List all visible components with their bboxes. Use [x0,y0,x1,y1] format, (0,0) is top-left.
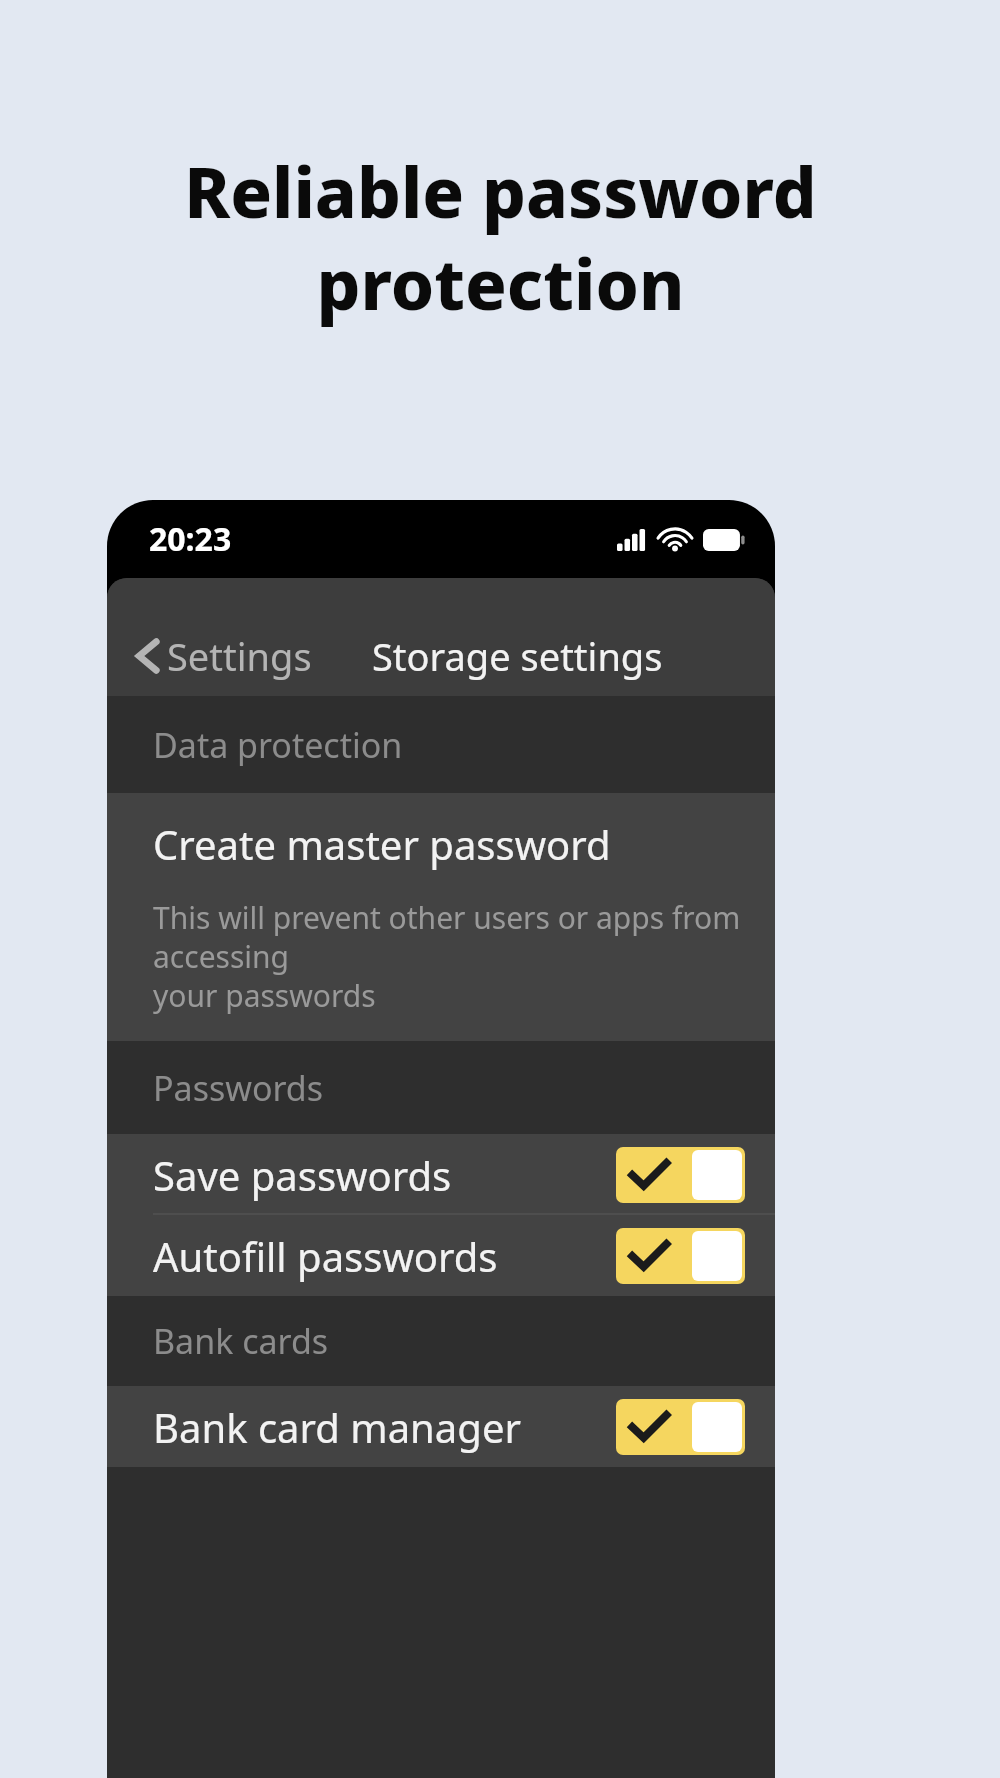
staticText: This will prevent other users or apps fr… [153,897,745,1015]
staticText: Create master password [153,817,611,871]
button[interactable]: Bank card manager [107,1386,775,1467]
staticText: Save passwords [153,1148,452,1202]
staticText: Passwords [153,1065,324,1111]
staticText: Bank card manager [153,1400,521,1454]
other: Autofill passwords toggle, on [616,1228,745,1284]
staticText: Settings [167,630,312,682]
staticText: 20:23 [149,517,232,561]
staticText: Data protection [153,722,403,768]
other: Bank card manager toggle, on [616,1399,745,1455]
button[interactable]: Create master password [107,793,775,1041]
staticText: Bank cards [153,1318,329,1364]
staticText: Reliable password protection [184,144,817,330]
staticText: Storage settings [372,630,663,682]
button[interactable]: Autofill passwords [107,1215,775,1296]
other: Save passwords toggle, on [616,1147,745,1203]
button[interactable]: Save passwords [107,1134,775,1215]
staticText: Autofill passwords [153,1229,498,1283]
button[interactable]: Settings [127,622,320,690]
